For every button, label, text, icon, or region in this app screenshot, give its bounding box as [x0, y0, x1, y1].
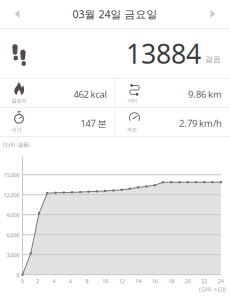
- staticText: (단위 : 걸음): [3, 141, 30, 148]
- staticText: 9,000: [6, 212, 19, 219]
- button[interactable]: Previous day: [0, 0, 34, 28]
- staticText: 14: [135, 278, 141, 285]
- staticText: 147 분: [80, 117, 106, 129]
- staticText: 12,000: [3, 192, 19, 199]
- button[interactable]: 속도: [115, 108, 230, 136]
- staticText: 03월 24일 금요일: [72, 7, 157, 21]
- staticText: 4: [53, 278, 56, 285]
- staticText: 22: [201, 278, 207, 285]
- staticText: 거리: [127, 97, 137, 104]
- staticText: 16: [152, 278, 158, 285]
- staticText: 0: [16, 272, 19, 279]
- staticText: 8: [86, 278, 89, 285]
- staticText: 속도: [127, 126, 137, 133]
- staticText: 걸음: [205, 54, 221, 64]
- staticText: 9.86 km: [188, 88, 222, 100]
- button[interactable]: Next day: [196, 0, 230, 28]
- staticText: 시간: [11, 126, 21, 133]
- staticText: 15,000: [3, 172, 19, 179]
- button[interactable]: 거리: [115, 79, 230, 107]
- staticText: 2: [36, 278, 39, 285]
- staticText: 20: [185, 278, 191, 285]
- staticText: 칼로리: [11, 97, 26, 104]
- staticText: 2.79 km/h: [179, 117, 222, 129]
- staticText: 6: [69, 278, 72, 285]
- staticText: 0: [21, 278, 24, 285]
- button[interactable]: 시간: [0, 108, 114, 136]
- staticText: 12: [119, 278, 125, 285]
- staticText: 3,000: [6, 252, 19, 259]
- staticText: 18: [168, 278, 174, 285]
- staticText: 10: [102, 278, 108, 285]
- button[interactable]: 칼로리: [0, 79, 114, 107]
- staticText: (단위 : 시간): [199, 286, 226, 293]
- staticText: 462 kcal: [73, 88, 106, 100]
- staticText: 24: [218, 278, 224, 285]
- staticText: 13884: [126, 36, 201, 71]
- staticText: 6,000: [6, 232, 19, 239]
